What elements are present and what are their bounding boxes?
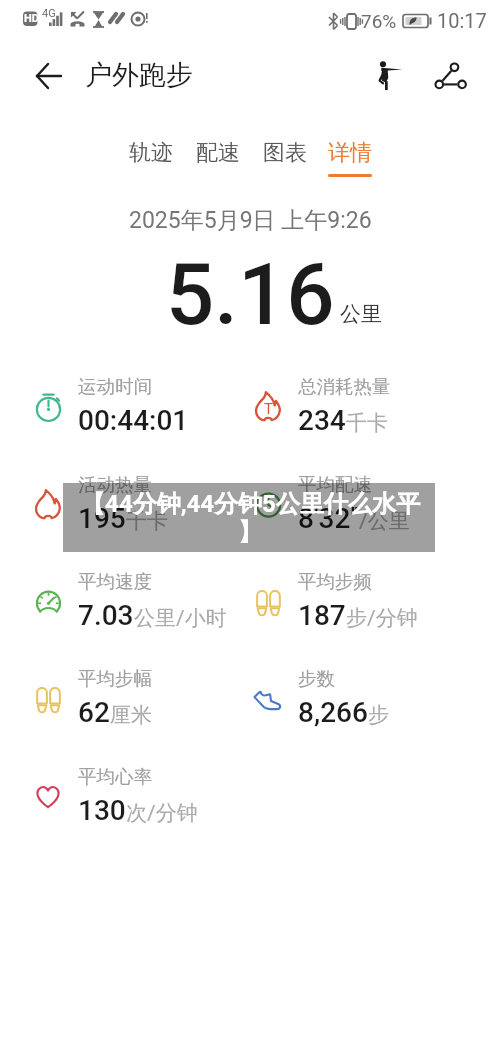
staticText: 平均配速 (298, 473, 372, 496)
staticText: 平均步幅 (78, 667, 152, 690)
staticText: 4G (42, 7, 56, 20)
staticText: 运动时间 (78, 375, 152, 398)
staticText: 配速 (196, 139, 240, 167)
staticText: 7.03 (78, 599, 134, 632)
staticText: 【44分钟,44分钟5公里什么水平 (81, 489, 420, 519)
button[interactable]: Sport type (366, 55, 408, 97)
staticText: 轨迹 (129, 139, 173, 167)
staticText: 公里 (340, 301, 382, 327)
staticText: 公里/小时 (134, 605, 227, 631)
staticText: T (264, 400, 273, 418)
staticText: 234 (298, 404, 346, 437)
staticText: 步/分钟 (346, 605, 418, 631)
staticText: 千卡 (126, 508, 168, 534)
staticText: 总消耗热量 (298, 375, 391, 398)
staticText: 195 (78, 502, 126, 535)
button[interactable]: 图表 (263, 139, 307, 177)
staticText: 平均心率 (78, 765, 152, 788)
staticText: 详情 (328, 139, 372, 167)
button[interactable]: 配速 (196, 139, 240, 177)
staticText: 厘米 (110, 702, 152, 728)
button[interactable]: Back (27, 56, 67, 96)
staticText: 10:17 (437, 9, 487, 32)
button[interactable]: 轨迹 (129, 139, 173, 177)
button[interactable]: 详情 (328, 139, 372, 177)
staticText: /公里 (359, 508, 410, 534)
staticText: 千卡 (346, 410, 388, 436)
button[interactable]: Average cadence (253, 566, 463, 636)
staticText: 平均步频 (298, 570, 372, 593)
button[interactable]: Steps (253, 663, 463, 733)
staticText: 2025年5月9日 上午9:26 (129, 206, 372, 235)
staticText: HD (24, 12, 39, 25)
button[interactable]: Average pace (253, 469, 463, 539)
staticText: 8'32'' (298, 502, 359, 535)
staticText: 62 (78, 696, 110, 729)
staticText: 户外跑步 (85, 58, 193, 92)
staticText: 00:44:01 (78, 404, 189, 437)
staticText: 130 (78, 794, 126, 827)
staticText: 步 (368, 702, 389, 728)
button[interactable]: Active calories (33, 469, 243, 539)
staticText: 5.16 (166, 245, 335, 345)
button[interactable]: Average heart rate (33, 761, 243, 831)
staticText: 图表 (263, 139, 307, 167)
staticText: 8,266 (298, 696, 368, 729)
button[interactable]: Average speed (33, 566, 243, 636)
staticText: 平均速度 (78, 570, 152, 593)
staticText: 步数 (298, 667, 335, 690)
staticText: 】 (238, 517, 262, 547)
button[interactable]: Share (429, 55, 471, 97)
staticText: 76% (361, 10, 397, 32)
staticText: 次/分钟 (126, 800, 198, 826)
button[interactable]: Total calories (253, 371, 463, 441)
button[interactable]: Average stride (33, 663, 243, 733)
staticText: 187 (298, 599, 346, 632)
button[interactable]: Exercise time (33, 371, 243, 441)
staticText: 活动热量 (78, 473, 152, 496)
